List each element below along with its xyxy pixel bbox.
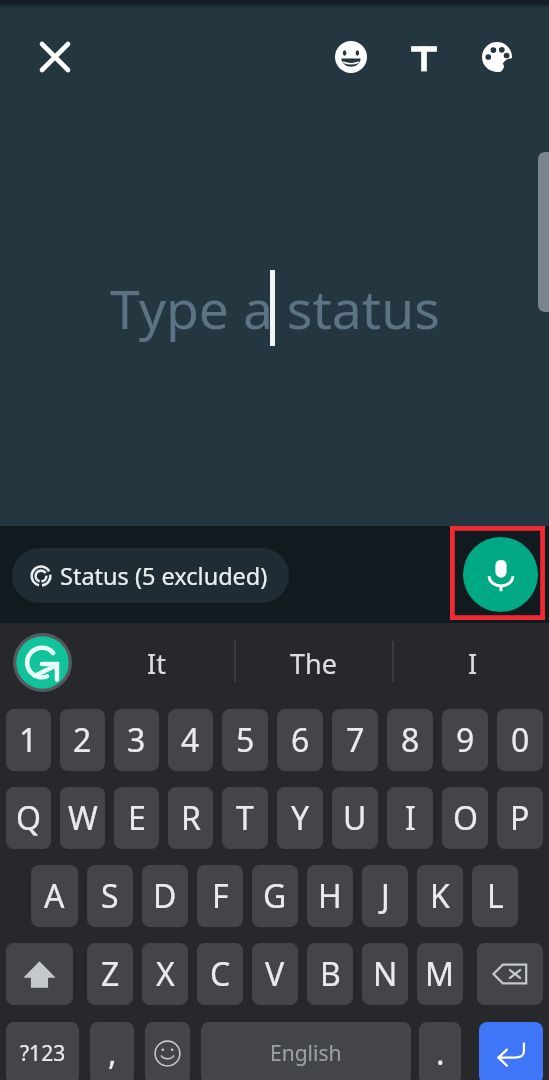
staticText: M <box>425 952 455 996</box>
staticText: R <box>181 796 201 840</box>
staticText: D <box>153 874 177 918</box>
staticText: Z <box>101 952 120 996</box>
button[interactable]: Close <box>31 33 79 81</box>
staticText: C <box>210 952 231 996</box>
staticText: J <box>381 874 390 918</box>
button[interactable]: B <box>307 943 353 1005</box>
button[interactable]: , <box>90 1022 134 1080</box>
staticText: 4 <box>181 718 200 762</box>
staticText: N <box>373 952 398 996</box>
staticText: P <box>510 796 530 840</box>
button[interactable]: R <box>168 787 213 849</box>
staticText: , <box>108 1031 117 1075</box>
staticText: 9 <box>456 718 475 762</box>
staticText: It <box>147 645 166 682</box>
button[interactable]: 2 <box>60 709 105 771</box>
staticText: U <box>343 796 367 840</box>
button[interactable]: Z <box>87 943 133 1005</box>
staticText: English <box>270 1039 342 1068</box>
button[interactable]: Status (5 excluded) <box>12 548 289 603</box>
button[interactable]: 1 <box>6 709 51 771</box>
button[interactable]: W <box>60 787 105 849</box>
button[interactable]: I <box>418 631 528 695</box>
button[interactable]: 0 <box>497 709 543 771</box>
button[interactable]: It <box>101 631 211 695</box>
button[interactable]: T <box>222 787 268 849</box>
button[interactable]: Backspace <box>477 943 543 1005</box>
staticText: L <box>487 874 504 918</box>
staticText: 3 <box>127 718 146 762</box>
staticText: 2 <box>73 718 92 762</box>
button[interactable]: C <box>197 943 243 1005</box>
button[interactable]: I <box>387 787 433 849</box>
staticText: The <box>290 645 337 682</box>
staticText: H <box>318 874 342 918</box>
staticText: S <box>101 874 119 918</box>
button[interactable]: 6 <box>277 709 323 771</box>
button[interactable]: English <box>201 1022 411 1080</box>
staticText: 8 <box>401 718 420 762</box>
button[interactable]: V <box>252 943 298 1005</box>
button[interactable]: D <box>142 865 188 927</box>
button[interactable]: S <box>87 865 133 927</box>
button[interactable]: Enter <box>479 1022 543 1080</box>
staticText: F <box>212 874 229 918</box>
button[interactable]: Shift <box>6 943 73 1005</box>
staticText: . <box>436 1031 445 1075</box>
button[interactable]: Text style <box>400 33 448 81</box>
staticText: E <box>128 796 146 840</box>
staticText: W <box>68 796 98 840</box>
button[interactable]: P <box>497 787 543 849</box>
button[interactable]: Y <box>277 787 323 849</box>
staticText: Status (5 excluded) <box>60 560 268 592</box>
button[interactable]: A <box>31 865 78 927</box>
staticText: K <box>430 874 450 918</box>
staticText: ?123 <box>20 1039 66 1068</box>
button[interactable]: Emoji keyboard <box>145 1022 190 1080</box>
button[interactable]: 5 <box>222 709 268 771</box>
button[interactable]: H <box>307 865 353 927</box>
button[interactable]: Emoji <box>327 33 375 81</box>
button[interactable]: E <box>114 787 159 849</box>
button[interactable]: Background colour <box>473 33 521 81</box>
staticText: 0 <box>511 718 530 762</box>
staticText: X <box>156 952 175 996</box>
button[interactable]: Grammarly <box>13 633 72 692</box>
button[interactable]: 8 <box>387 709 433 771</box>
staticText: 6 <box>291 718 310 762</box>
button[interactable]: 9 <box>442 709 488 771</box>
button[interactable]: Q <box>6 787 51 849</box>
staticText: A <box>44 874 65 918</box>
staticText: T <box>236 796 254 840</box>
staticText: V <box>265 952 285 996</box>
staticText: 7 <box>346 718 365 762</box>
staticText: B <box>320 952 341 996</box>
button[interactable]: K <box>417 865 463 927</box>
button[interactable]: ?123 <box>6 1022 79 1080</box>
staticText: Y <box>291 796 310 840</box>
button[interactable]: F <box>197 865 243 927</box>
button[interactable]: 7 <box>332 709 378 771</box>
button[interactable]: 4 <box>168 709 213 771</box>
button[interactable]: O <box>442 787 488 849</box>
staticText: G <box>263 874 287 918</box>
button[interactable]: L <box>472 865 518 927</box>
button[interactable]: 3 <box>114 709 159 771</box>
button[interactable]: The <box>258 631 368 695</box>
button[interactable]: U <box>332 787 378 849</box>
staticText: 5 <box>236 718 255 762</box>
button[interactable]: X <box>142 943 188 1005</box>
staticText: I <box>405 796 416 840</box>
button[interactable]: Record voice status <box>463 537 538 612</box>
staticText: Type a status <box>110 272 440 345</box>
button[interactable]: . <box>419 1022 461 1080</box>
button[interactable]: J <box>362 865 408 927</box>
button[interactable]: G <box>252 865 298 927</box>
staticText: 1 <box>19 718 38 762</box>
staticText: I <box>468 645 478 682</box>
button[interactable]: M <box>417 943 463 1005</box>
staticText: O <box>453 796 478 840</box>
button[interactable]: N <box>362 943 408 1005</box>
staticText: Q <box>16 796 41 840</box>
